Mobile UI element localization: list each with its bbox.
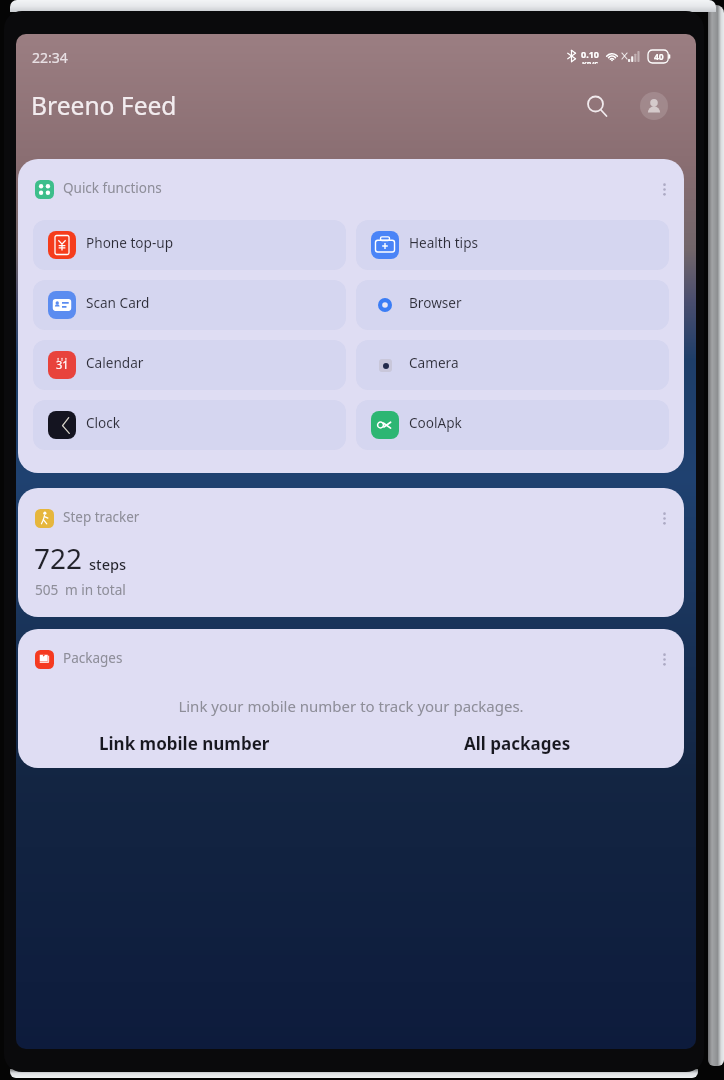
button[interactable]: All packages [351, 728, 684, 758]
staticText: 40 [654, 51, 664, 63]
button[interactable]: Browser [356, 280, 669, 330]
button[interactable]: Clock [33, 400, 346, 450]
staticText: Camera [409, 353, 459, 372]
staticText: steps [89, 554, 127, 574]
staticText: Browser [409, 293, 462, 312]
staticText: m in total [65, 580, 126, 599]
staticText: Phone top-up [86, 233, 174, 252]
staticText: 31 [56, 357, 69, 372]
button[interactable]: Profile [640, 92, 668, 120]
staticText: Link mobile number [99, 732, 270, 755]
button[interactable]: More options [648, 178, 670, 200]
staticText: Scan Card [86, 293, 150, 312]
button[interactable]: Search [577, 86, 617, 126]
staticText: Calendar [86, 353, 144, 372]
button[interactable]: More options [648, 648, 670, 670]
staticText: Quick functions [63, 179, 162, 197]
staticText: Health tips [409, 233, 479, 252]
button[interactable]: CoolApk [356, 400, 669, 450]
staticText: CoolApk [409, 413, 462, 432]
staticText: All packages [464, 732, 571, 755]
staticText: 22:34 [32, 48, 68, 64]
staticText: Clock [86, 413, 121, 432]
staticText: KB/S [582, 60, 599, 64]
staticText: 722 [34, 539, 83, 577]
button[interactable]: Link mobile number [18, 728, 351, 758]
button[interactable]: 31 [33, 340, 346, 390]
staticText: Breeno Feed [31, 89, 177, 123]
button[interactable]: Step tracker [18, 488, 684, 617]
button[interactable]: Health tips [356, 220, 669, 270]
staticText: 0.10 [581, 48, 599, 60]
button[interactable]: Scan Card [33, 280, 346, 330]
button[interactable]: More options [648, 507, 670, 529]
staticText: 505 [35, 580, 59, 599]
staticText: Step tracker [63, 508, 140, 526]
button[interactable]: Camera [356, 340, 669, 390]
staticText: Link your mobile number to track your pa… [18, 696, 684, 716]
button[interactable]: Phone top-up [33, 220, 346, 270]
staticText: Packages [63, 649, 123, 667]
